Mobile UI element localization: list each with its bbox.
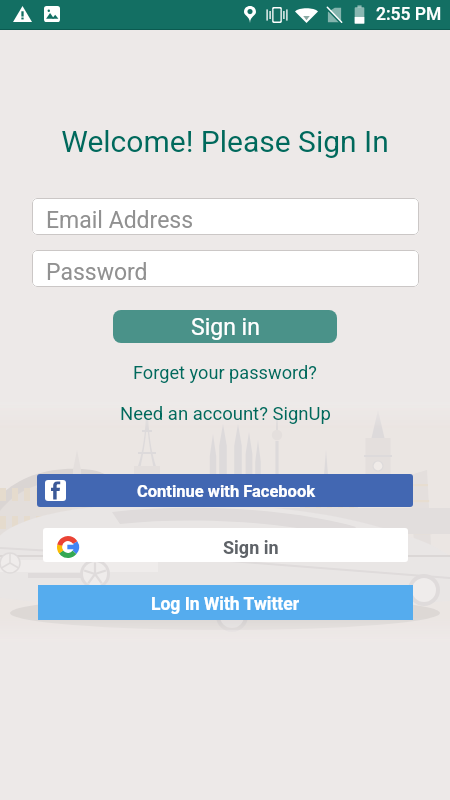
staticText: Email Address xyxy=(46,207,194,234)
staticText: Sign in xyxy=(223,537,279,558)
staticText: Password xyxy=(46,259,148,286)
button[interactable]: Password xyxy=(32,250,419,287)
staticText: Sign in xyxy=(191,314,260,341)
other: Screenshot xyxy=(44,6,60,22)
button[interactable]: Continue with Facebook xyxy=(37,474,413,507)
staticText: Continue with Facebook xyxy=(137,482,316,501)
staticText: Need an account? SignUp xyxy=(120,403,331,425)
staticText: Log In With Twitter xyxy=(151,594,300,615)
button[interactable]: Sign in xyxy=(113,310,337,343)
other: Warning xyxy=(13,6,32,22)
button[interactable]: Sign in xyxy=(43,528,408,562)
button[interactable]: Need an account? SignUp xyxy=(112,400,339,428)
button[interactable]: Log In With Twitter xyxy=(38,585,413,620)
button[interactable]: Email Address xyxy=(32,198,419,235)
staticText: 2:55 PM xyxy=(376,4,442,25)
staticText: Forget your password? xyxy=(133,362,317,383)
button[interactable]: Forget your password? xyxy=(125,359,325,386)
staticText: Welcome! Please Sign In xyxy=(0,124,450,159)
